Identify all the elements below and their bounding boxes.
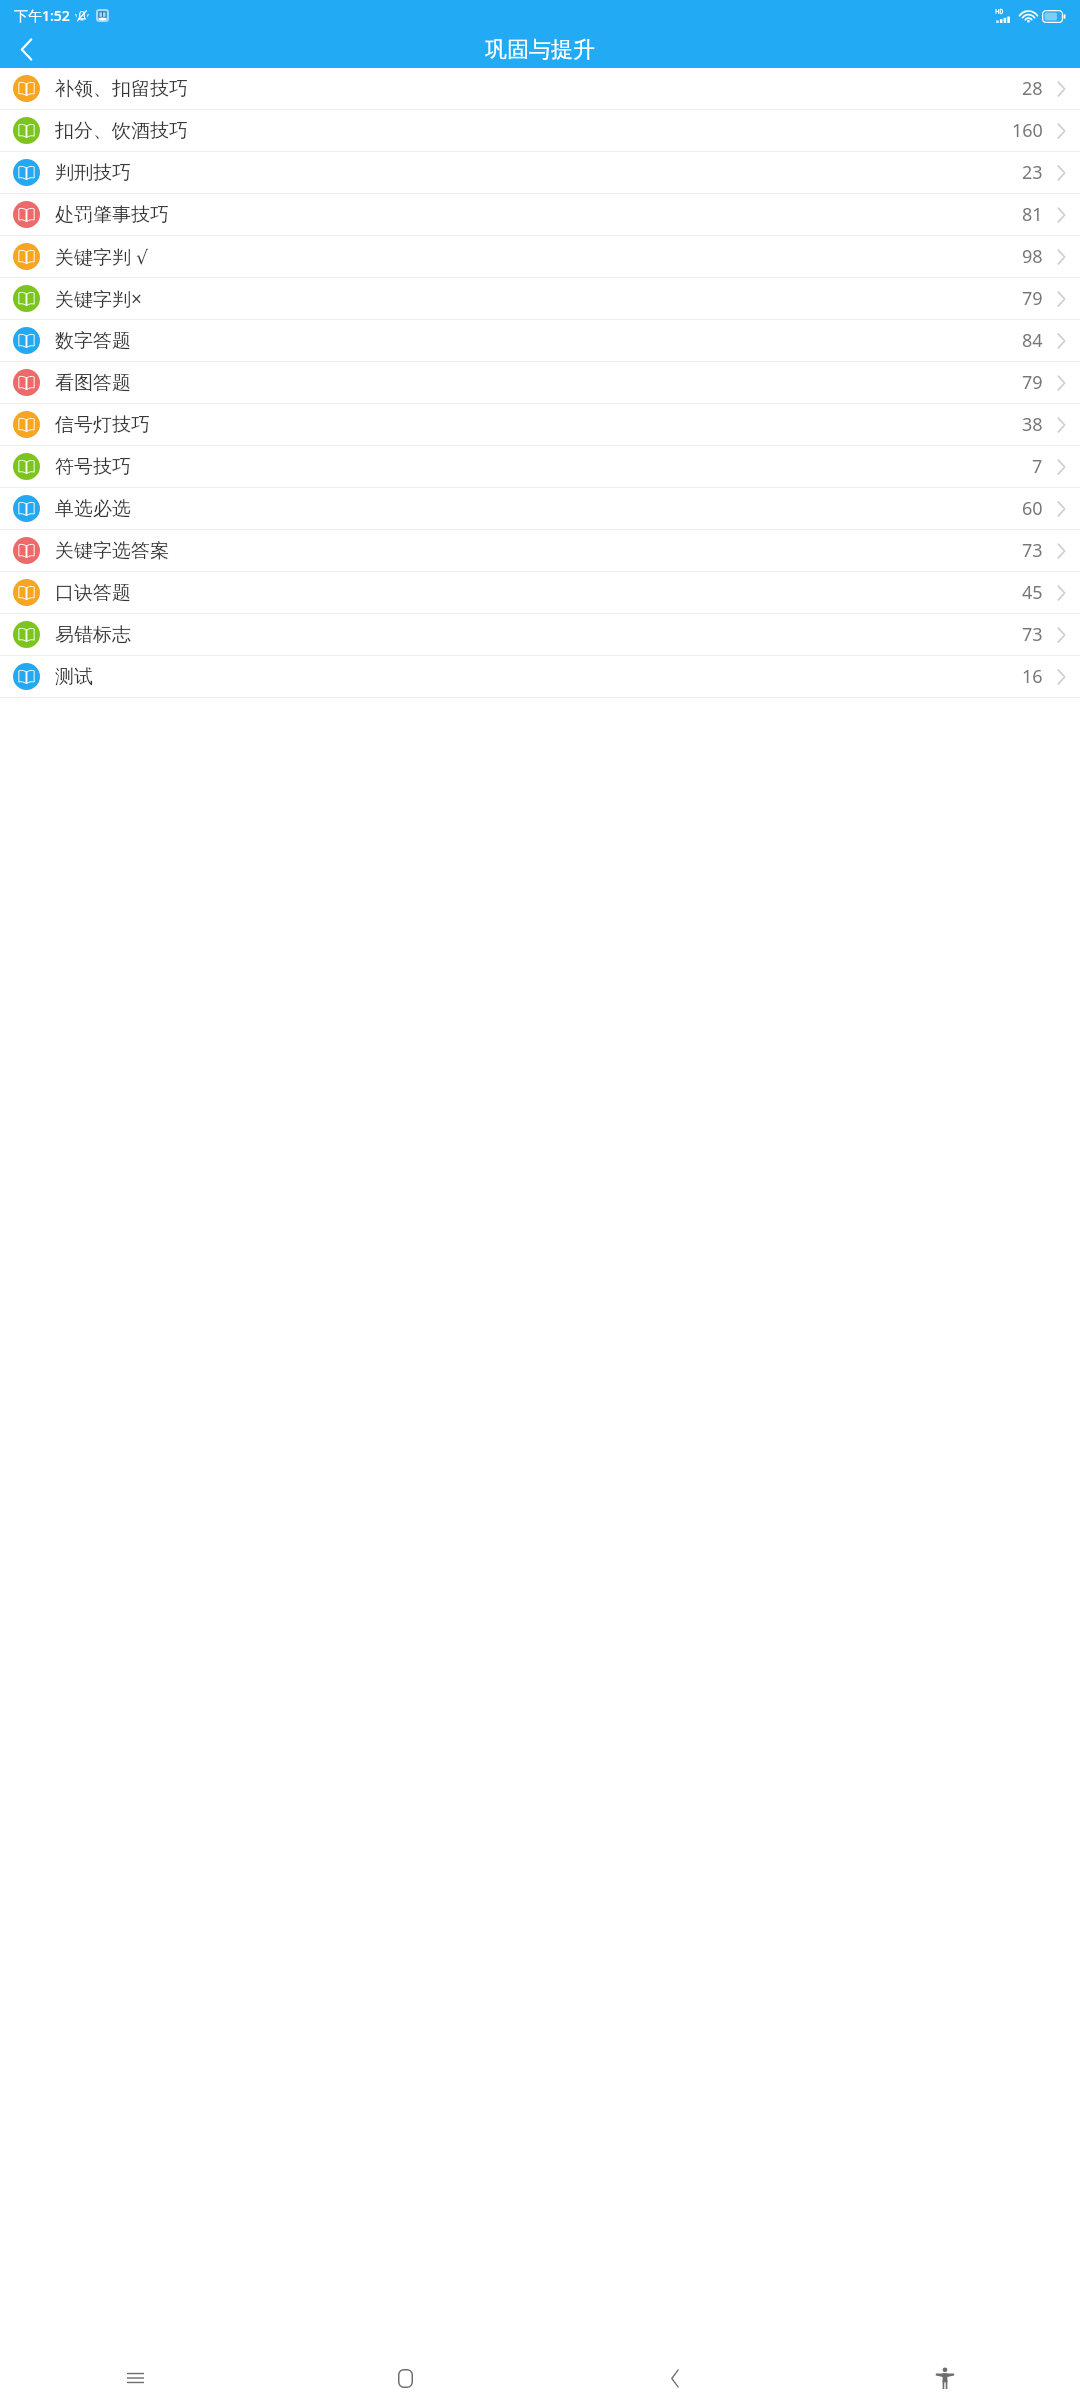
button[interactable]: 关键字选答案 — [0, 530, 1080, 571]
staticText: 信号灯技巧 — [55, 413, 150, 437]
staticText: 口诀答题 — [55, 581, 131, 605]
staticText: 79 — [1022, 286, 1043, 311]
button[interactable]: 关键字判× — [0, 278, 1080, 319]
staticText: 单选必选 — [55, 497, 131, 521]
staticText: 扣分、饮酒技巧 — [55, 119, 188, 143]
staticText: 73 — [1022, 538, 1043, 563]
staticText: 23 — [1022, 160, 1043, 185]
staticText: 160 — [1012, 118, 1043, 143]
button[interactable]: 扣分、饮酒技巧 — [0, 110, 1080, 151]
button[interactable]: 信号灯技巧 — [0, 404, 1080, 445]
staticText: 79 — [1022, 370, 1043, 395]
staticText: 7 — [1032, 454, 1043, 479]
staticText: 45 — [1022, 580, 1043, 605]
button[interactable]: Accessibility — [810, 2356, 1080, 2400]
button[interactable]: Home — [270, 2356, 540, 2400]
button[interactable]: 看图答题 — [0, 362, 1080, 403]
staticText: 81 — [1022, 202, 1043, 227]
staticText: 测试 — [55, 665, 93, 689]
button[interactable]: 处罚肇事技巧 — [0, 194, 1080, 235]
button[interactable]: 单选必选 — [0, 488, 1080, 529]
staticText: 下午1:52 — [14, 6, 70, 25]
staticText: 符号技巧 — [55, 455, 131, 479]
staticText: 巩固与提升 — [485, 36, 595, 64]
button[interactable]: 易错标志 — [0, 614, 1080, 655]
button[interactable]: Recents — [0, 2356, 270, 2400]
staticText: 关键字判× — [55, 286, 142, 312]
button[interactable]: 判刑技巧 — [0, 152, 1080, 193]
staticText: 易错标志 — [55, 623, 131, 647]
staticText: 判刑技巧 — [55, 161, 131, 185]
staticText: 处罚肇事技巧 — [55, 203, 169, 227]
button[interactable]: 符号技巧 — [0, 446, 1080, 487]
button[interactable]: 测试 — [0, 656, 1080, 697]
staticText: 38 — [1022, 412, 1043, 437]
button[interactable]: 关键字判 √ — [0, 236, 1080, 277]
staticText: 补领、扣留技巧 — [55, 77, 188, 101]
staticText: 16 — [1022, 664, 1043, 689]
button[interactable]: Back — [4, 31, 48, 68]
button[interactable]: 口诀答题 — [0, 572, 1080, 613]
staticText: 数字答题 — [55, 329, 131, 353]
button[interactable]: 补领、扣留技巧 — [0, 68, 1080, 109]
button[interactable]: 数字答题 — [0, 320, 1080, 361]
staticText: 84 — [1022, 328, 1043, 353]
staticText: 关键字判 √ — [55, 244, 149, 270]
staticText: 看图答题 — [55, 371, 131, 395]
staticText: 98 — [1022, 244, 1043, 269]
button[interactable]: Back — [540, 2356, 810, 2400]
staticText: 60 — [1022, 496, 1043, 521]
staticText: 73 — [1022, 622, 1043, 647]
staticText: 28 — [1022, 76, 1043, 101]
staticText: 关键字选答案 — [55, 539, 169, 563]
